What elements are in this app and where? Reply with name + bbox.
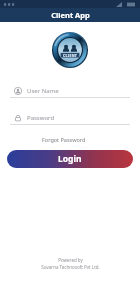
button[interactable]: Password — [10, 112, 130, 125]
staticText: CLIENT — [63, 53, 78, 58]
staticText: User Name — [27, 87, 59, 95]
button[interactable]: User Name — [10, 85, 130, 98]
staticText: Password — [27, 114, 55, 122]
staticText: Login — [58, 153, 82, 165]
staticText: Suvarna Technosoft Pvt Ltd. — [41, 264, 100, 270]
button[interactable]: Forgot Password — [39, 135, 89, 144]
staticText: Forgot Password — [42, 136, 86, 143]
button[interactable]: Login — [7, 150, 133, 168]
staticText: Powered by — [58, 257, 83, 263]
staticText: Client App — [51, 10, 90, 20]
